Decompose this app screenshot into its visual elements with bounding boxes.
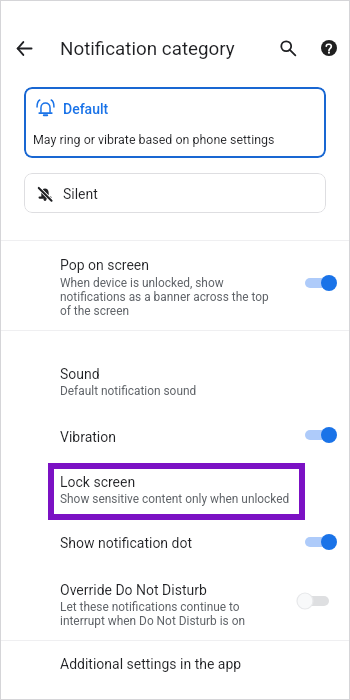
button[interactable]: Help (313, 32, 345, 64)
staticText: Sound (60, 366, 100, 382)
button[interactable]: On (302, 424, 338, 446)
staticText: Override Do Not Disturb (60, 582, 207, 598)
button[interactable]: Show notification dot (0, 532, 350, 552)
staticText: Let these notifications continue to inte… (60, 600, 245, 628)
button[interactable]: Vibration (0, 426, 350, 446)
staticText: Additional settings in the app (60, 656, 242, 672)
button[interactable]: On (302, 531, 338, 553)
button[interactable]: Override Do Not Disturb (0, 579, 350, 599)
staticText: Vibration (60, 429, 116, 445)
button[interactable]: Pop on screen (0, 254, 350, 274)
button[interactable]: Additional settings in the app (0, 653, 350, 673)
staticText: Default (63, 101, 109, 117)
button[interactable]: Default (24, 87, 326, 158)
button[interactable]: Sound (0, 363, 350, 383)
button[interactable]: Off (302, 590, 338, 612)
staticText: Show sensitive content only when unlocke… (60, 492, 290, 506)
staticText: Notification category (60, 38, 235, 60)
staticText: Show notification dot (60, 535, 193, 551)
button[interactable]: Lock screen (0, 471, 350, 491)
staticText: Lock screen (60, 474, 136, 490)
staticText: When device is unlocked, show notificati… (60, 276, 269, 318)
button[interactable]: Search (272, 32, 304, 64)
button[interactable]: On (302, 272, 338, 294)
staticText: Silent (63, 186, 98, 202)
staticText: Pop on screen (60, 257, 149, 273)
staticText: May ring or vibrate based on phone setti… (33, 132, 275, 147)
button[interactable]: Back (8, 32, 40, 64)
staticText: Default notification sound (60, 384, 197, 398)
button[interactable]: Silent (24, 173, 326, 213)
